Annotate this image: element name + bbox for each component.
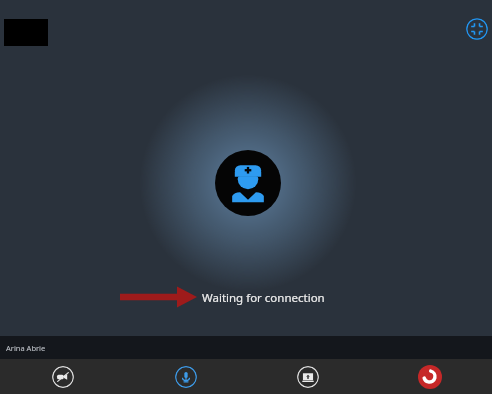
button[interactable]: Fullscreen [466, 18, 488, 40]
staticText: Arina Abrie [6, 343, 46, 353]
button[interactable]: Turn camera on [52, 366, 74, 388]
button[interactable]: Caller avatar [215, 150, 281, 216]
button[interactable]: End call [418, 365, 442, 389]
button[interactable]: Share screen [297, 366, 319, 388]
button[interactable]: Mute microphone [175, 366, 197, 388]
staticText: Waiting for connection [202, 290, 325, 306]
